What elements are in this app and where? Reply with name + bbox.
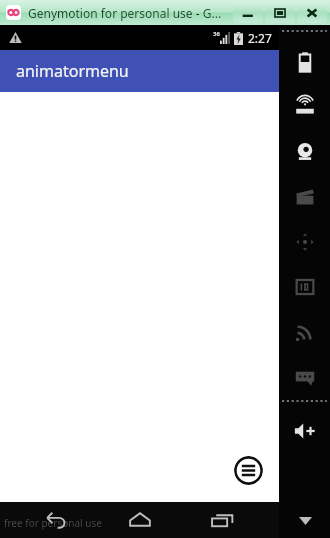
button[interactable]: Screen recorder bbox=[279, 174, 330, 219]
button[interactable]: Home bbox=[113, 503, 167, 537]
button[interactable]: Close bbox=[297, 3, 327, 23]
button[interactable]: Network bbox=[279, 309, 330, 354]
button[interactable]: animatormenu bbox=[0, 50, 279, 92]
staticText: 2:27 bbox=[248, 30, 272, 46]
button[interactable]: Recents bbox=[196, 503, 250, 537]
button[interactable]: Back bbox=[29, 503, 83, 537]
button[interactable]: Open menu bbox=[234, 456, 263, 485]
button[interactable]: Maximize bbox=[265, 3, 295, 23]
button[interactable]: Volume up bbox=[279, 408, 330, 453]
button[interactable]: Battery bbox=[279, 39, 330, 84]
button[interactable]: Camera bbox=[279, 129, 330, 174]
staticText: Genymotion for personal use - G... bbox=[28, 5, 222, 21]
button[interactable]: Rotate bbox=[279, 219, 330, 264]
button[interactable]: Identifiers bbox=[279, 264, 330, 309]
button[interactable]: SMS bbox=[279, 354, 330, 399]
button[interactable]: Minimize bbox=[233, 3, 263, 23]
button[interactable]: More tools bbox=[287, 510, 323, 532]
staticText: 36 bbox=[213, 30, 220, 38]
staticText: animatormenu bbox=[16, 60, 129, 82]
staticText: free for personal use bbox=[4, 516, 102, 530]
button[interactable]: GPS bbox=[279, 84, 330, 129]
